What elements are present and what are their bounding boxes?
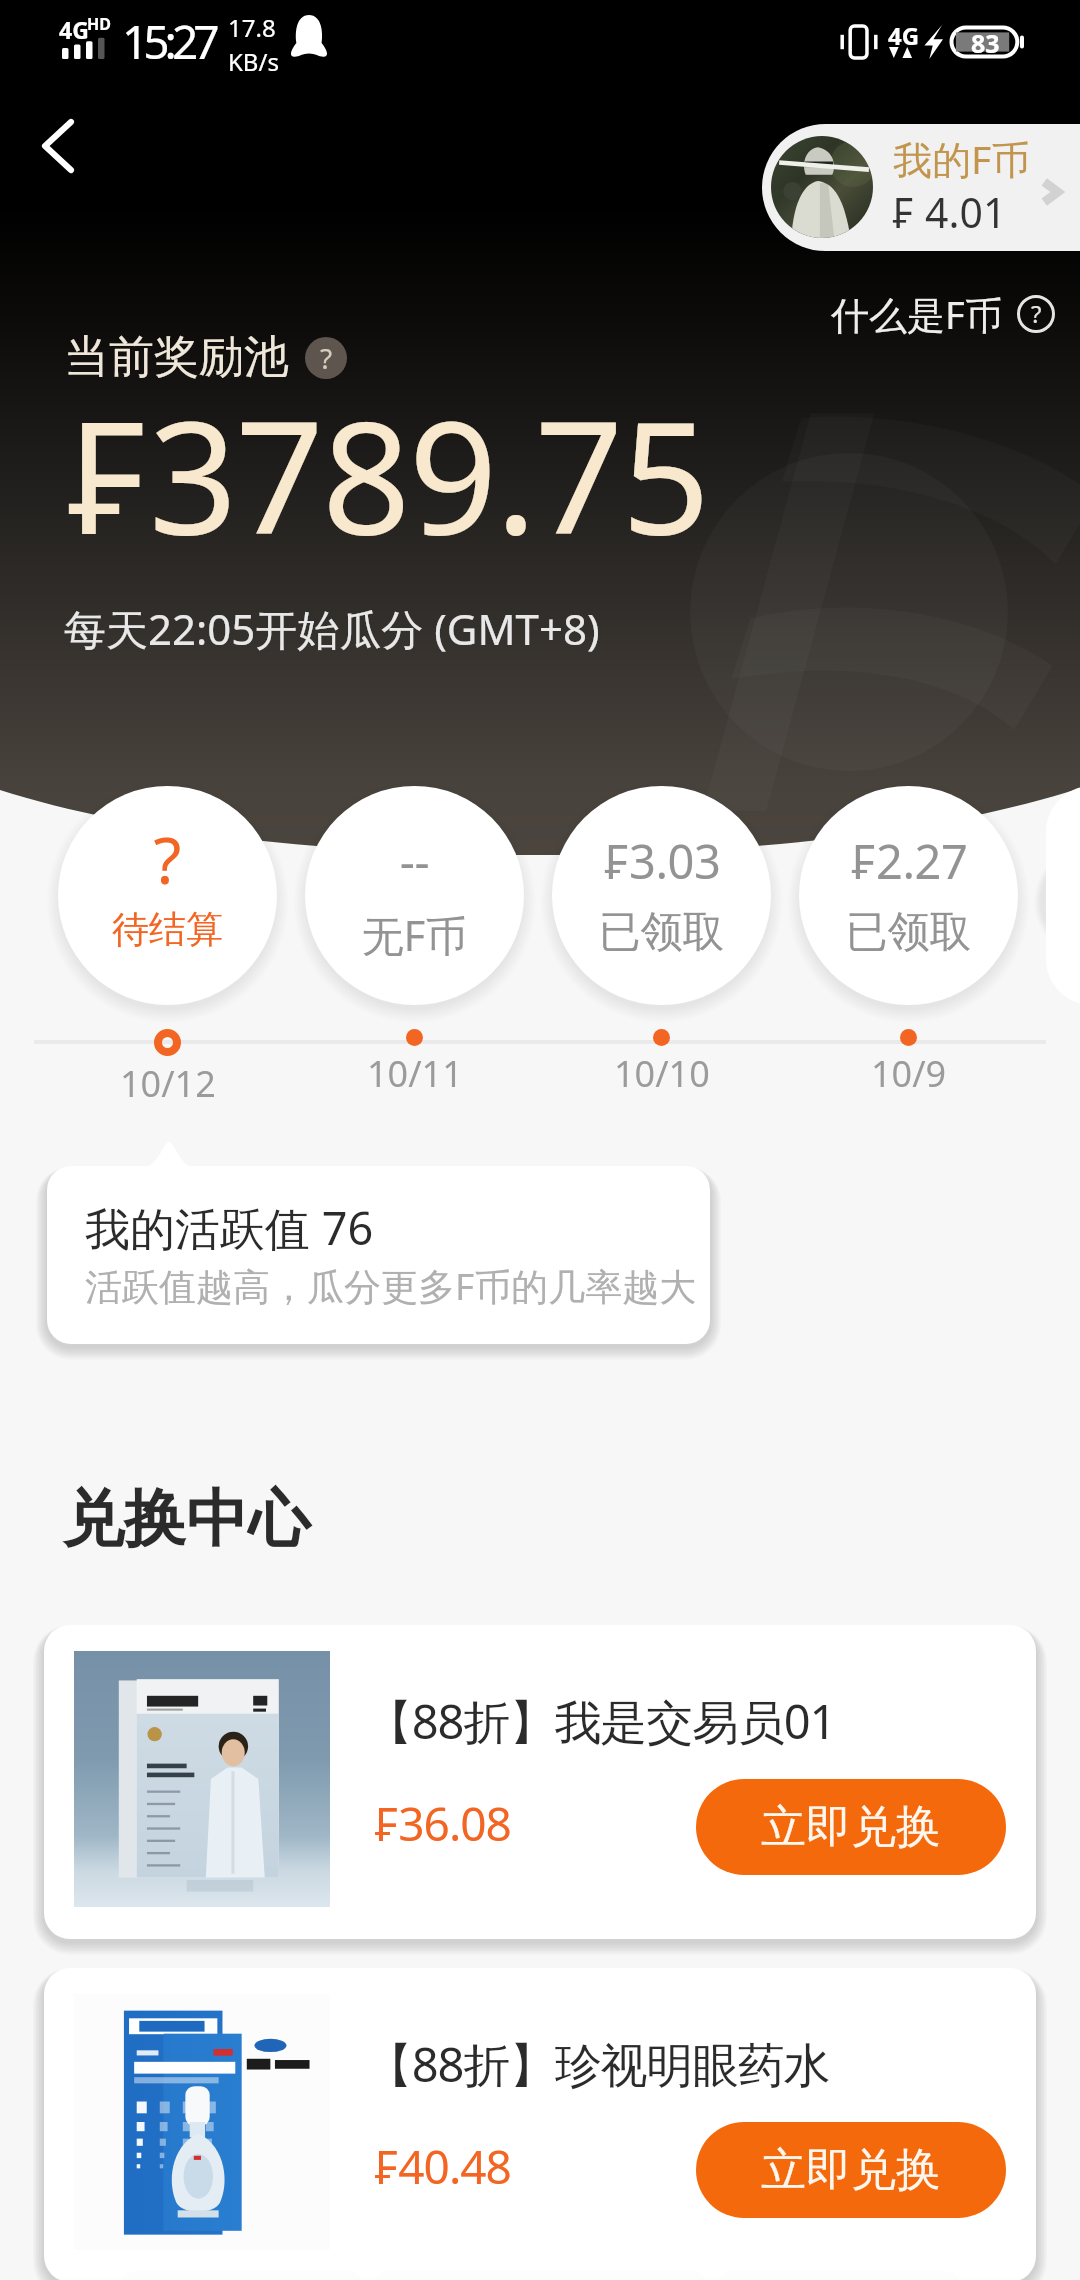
button[interactable] xyxy=(799,786,1018,1005)
staticText: ? xyxy=(320,339,333,377)
staticText: 83 xyxy=(971,26,1000,58)
staticText: ? xyxy=(58,816,277,903)
button[interactable]: 立即兑换 xyxy=(696,2122,1006,2218)
staticText: 【88折】我是交易员01 xyxy=(366,1689,836,1753)
staticText: ₣2.27 xyxy=(799,829,1018,893)
button[interactable]: 立即兑换 xyxy=(696,1779,1006,1875)
button[interactable]: 【88折】珍视明眼药水 xyxy=(44,1968,1036,2280)
staticText: ₣3.03 xyxy=(552,829,771,893)
staticText: 什么是F币 xyxy=(831,288,1003,340)
staticText: 10/12 xyxy=(120,1059,216,1108)
button[interactable]: 我的F币 xyxy=(762,124,1080,251)
staticText: 【88折】珍视明眼药水 xyxy=(366,2032,830,2096)
button[interactable]: Back xyxy=(14,102,102,190)
staticText: 待结算 xyxy=(58,906,277,953)
staticText: 10/11 xyxy=(367,1049,463,1098)
staticText: 17.8 xyxy=(228,11,276,44)
staticText: 10/9 xyxy=(871,1049,947,1098)
staticText: 立即兑换 xyxy=(761,1799,941,1856)
button[interactable] xyxy=(47,1166,710,1344)
button[interactable]: 什么是F币 xyxy=(831,288,1055,340)
button[interactable]: 【88折】我是交易员01 xyxy=(44,1625,1036,1939)
staticText: ₣40.48 xyxy=(373,2135,511,2198)
button[interactable] xyxy=(58,786,277,1005)
staticText: 每天22:05开始瓜分 (GMT+8) xyxy=(64,600,600,657)
staticText: 立即兑换 xyxy=(761,2142,941,2199)
staticText: 4G xyxy=(888,19,920,52)
staticText: ₣3789.75 xyxy=(62,368,709,579)
staticText: ₣36.08 xyxy=(373,1792,511,1855)
staticText: 我的活跃值 76 xyxy=(85,1197,374,1258)
staticText: 15:27 xyxy=(122,10,215,73)
staticText: 10/10 xyxy=(614,1049,710,1098)
staticText: ₣ 4.01 xyxy=(891,184,1007,240)
staticText: KB/s xyxy=(228,45,279,78)
button[interactable] xyxy=(1046,786,1080,1005)
staticText: ? xyxy=(1031,297,1042,330)
staticText: HD xyxy=(87,13,111,35)
staticText: -- xyxy=(305,829,524,893)
staticText: 当前奖励池 xyxy=(64,329,289,386)
other: Vibrate xyxy=(838,22,880,62)
button[interactable] xyxy=(305,786,524,1005)
staticText: 兑换中心 xyxy=(62,1480,310,1558)
staticText: 4G xyxy=(59,14,89,45)
staticText: 我的F币 xyxy=(893,132,1031,185)
staticText: 已领取 xyxy=(799,906,1018,959)
button[interactable] xyxy=(552,786,771,1005)
staticText: 活跃值越高，瓜分更多F币的几率越大 xyxy=(85,1260,697,1311)
staticText: 无F币 xyxy=(305,906,524,963)
staticText: 已领取 xyxy=(552,906,771,959)
